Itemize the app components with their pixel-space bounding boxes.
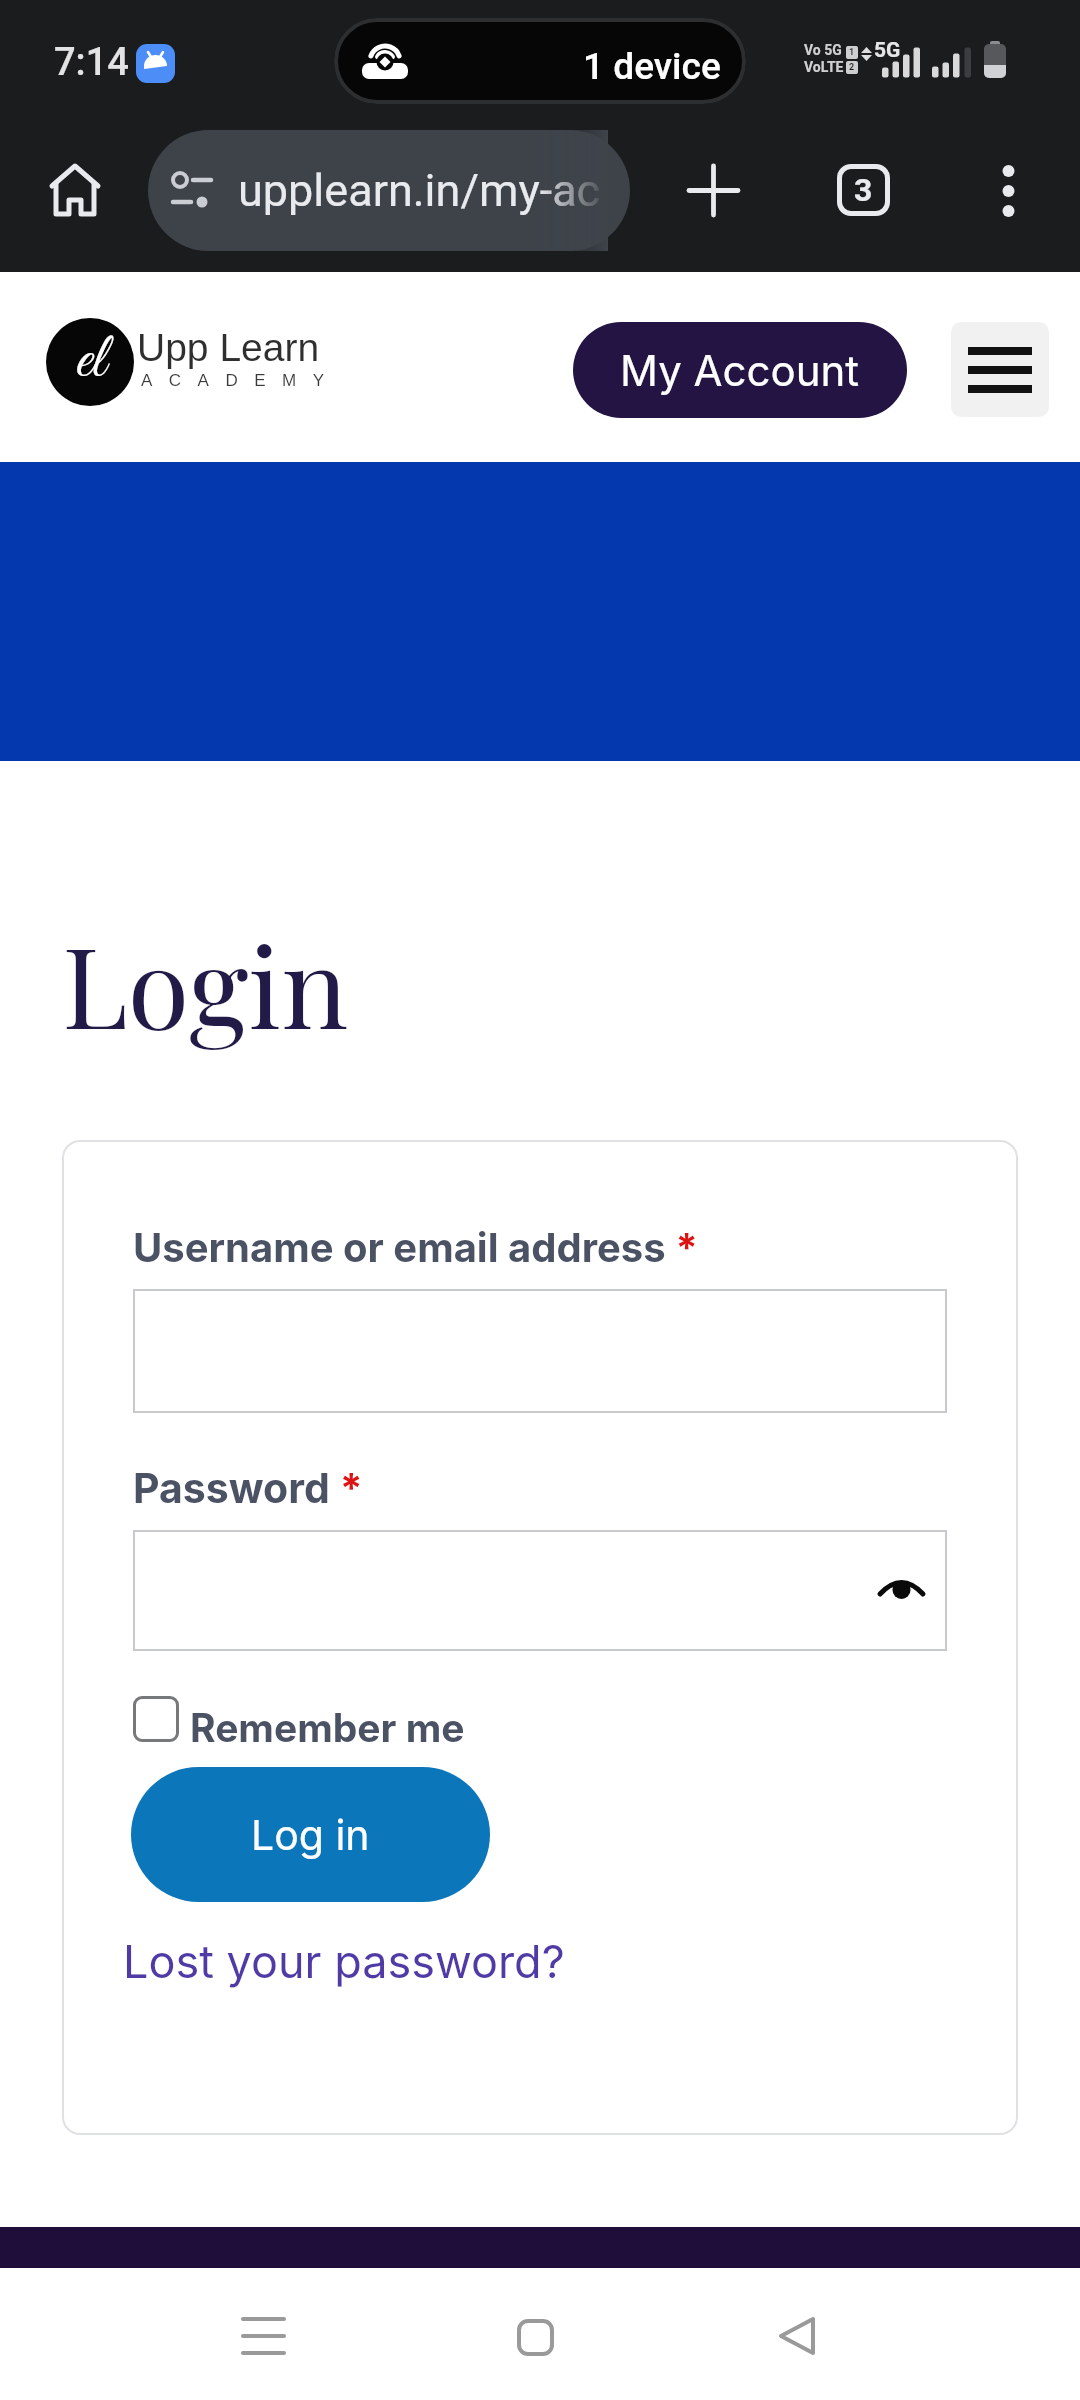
button[interactable]: My Account bbox=[573, 322, 907, 418]
staticText: 7:14 bbox=[54, 40, 129, 85]
staticText: 5G bbox=[874, 38, 901, 62]
button[interactable] bbox=[996, 165, 1021, 217]
button[interactable] bbox=[133, 1289, 947, 1413]
button[interactable] bbox=[334, 18, 746, 104]
button[interactable]: 3 bbox=[837, 164, 890, 216]
staticText: Log in bbox=[251, 1810, 370, 1860]
button[interactable]: Remember me bbox=[190, 1704, 590, 1746]
button[interactable] bbox=[133, 1530, 947, 1651]
staticText: Password bbox=[133, 1463, 330, 1513]
button[interactable] bbox=[133, 1696, 179, 1742]
staticText: ACADEMY bbox=[141, 371, 341, 390]
button[interactable]: upplearn.in/my-ac bbox=[148, 130, 630, 251]
button[interactable] bbox=[951, 322, 1049, 417]
staticText: Lost your password? bbox=[123, 1934, 565, 1988]
button[interactable]: el bbox=[46, 318, 134, 406]
button[interactable] bbox=[689, 166, 738, 215]
button[interactable] bbox=[517, 2319, 554, 2356]
button[interactable] bbox=[777, 2316, 817, 2356]
staticText: 1 bbox=[849, 47, 855, 58]
staticText: Upp Learn bbox=[137, 326, 320, 370]
staticText: VoLTE bbox=[804, 59, 844, 75]
staticText: 3 bbox=[854, 171, 873, 209]
button[interactable] bbox=[877, 1575, 926, 1607]
staticText: 1 device bbox=[583, 45, 721, 88]
staticText: Vo 5G bbox=[804, 42, 842, 58]
staticText: el bbox=[75, 322, 106, 402]
staticText: Remember me bbox=[190, 1704, 465, 1746]
button[interactable]: Log in bbox=[131, 1767, 490, 1902]
staticText: My Account bbox=[620, 345, 860, 396]
staticText: * bbox=[330, 1463, 363, 1513]
staticText: Username or email address bbox=[133, 1223, 666, 1271]
button[interactable]: Lost your password? bbox=[123, 1932, 683, 1990]
staticText: 2 bbox=[849, 62, 855, 73]
button[interactable] bbox=[47, 162, 103, 222]
staticText: upplearn.in/my-ac bbox=[238, 164, 601, 217]
button[interactable] bbox=[243, 2315, 285, 2357]
staticText: * bbox=[666, 1223, 698, 1271]
staticText: Login bbox=[62, 908, 349, 1057]
